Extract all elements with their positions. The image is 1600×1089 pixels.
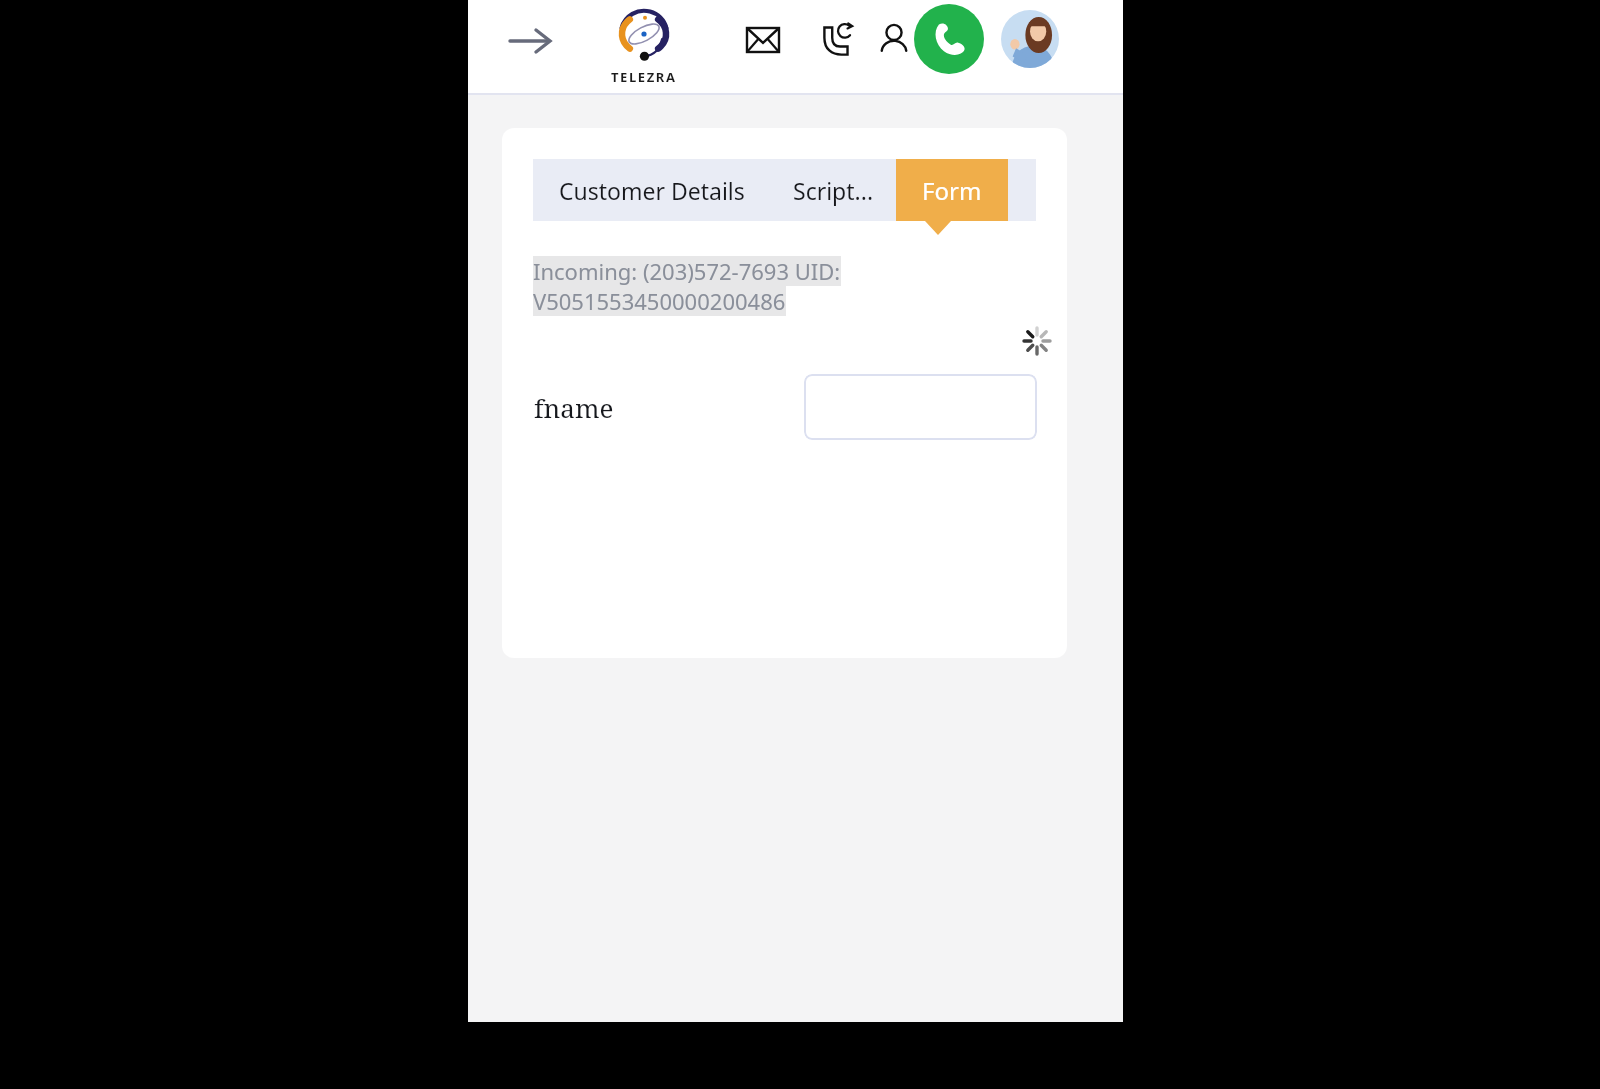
button[interactable]: Messages bbox=[740, 18, 786, 62]
button[interactable]: Telezra home bbox=[602, 6, 686, 90]
other: Loading bbox=[1021, 325, 1053, 357]
staticText: V5051553450000200486 bbox=[533, 286, 786, 316]
button[interactable]: Profile bbox=[872, 14, 916, 64]
button[interactable]: Script... bbox=[771, 159, 896, 221]
button[interactable]: Form bbox=[896, 159, 1008, 221]
button[interactable] bbox=[804, 374, 1037, 440]
button[interactable]: Account bbox=[1001, 10, 1059, 68]
staticText: TELEZRA bbox=[611, 68, 677, 86]
staticText: Incoming: (203)572-7693 UID: bbox=[533, 256, 841, 286]
staticText: Customer Details bbox=[559, 175, 745, 206]
button[interactable]: Forward bbox=[501, 16, 559, 66]
button[interactable]: Redial bbox=[814, 14, 862, 64]
button[interactable]: Call bbox=[914, 4, 984, 74]
button[interactable]: Customer Details bbox=[533, 159, 771, 221]
staticText: Form bbox=[922, 174, 982, 207]
staticText: fname bbox=[534, 390, 614, 425]
staticText: Script... bbox=[793, 175, 874, 206]
